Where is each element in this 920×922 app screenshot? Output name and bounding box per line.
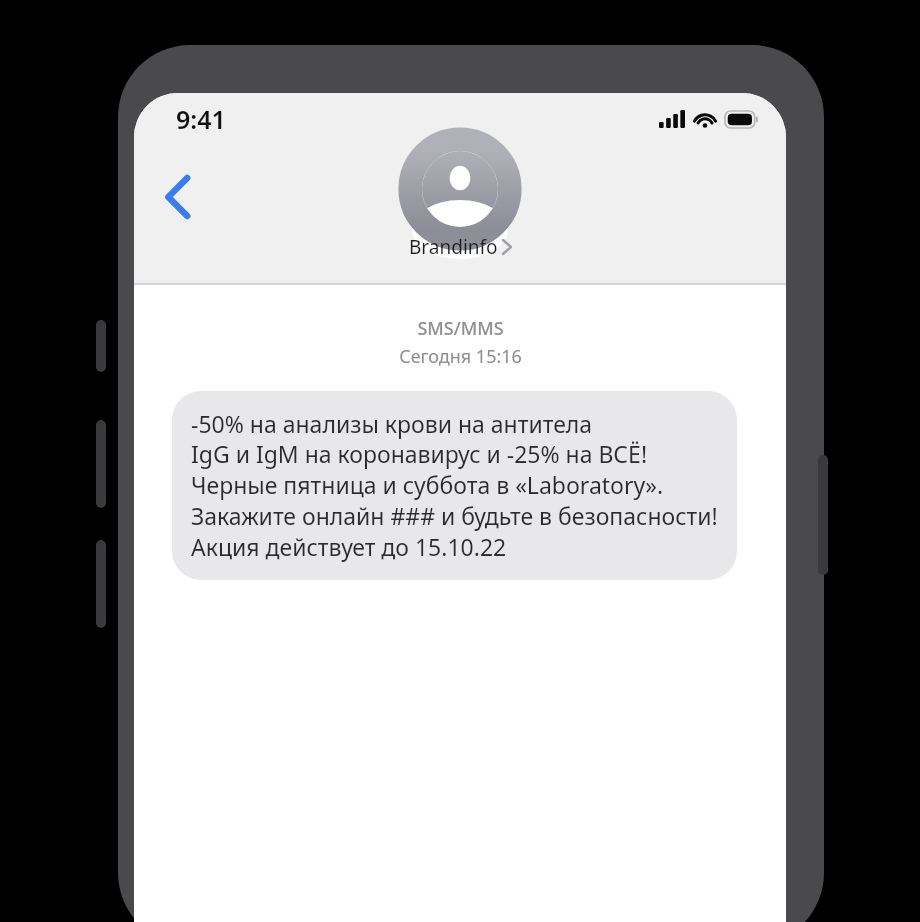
staticText: Brandinfo (409, 234, 498, 260)
staticText: -50% на анализы крови на антитела IgG и … (191, 408, 718, 563)
staticText: SMS/MMS (417, 316, 504, 341)
button[interactable]: -50% на анализы крови на антитела IgG и … (172, 391, 737, 580)
button[interactable]: Brandinfo (409, 151, 511, 260)
button[interactable]: Back (150, 169, 206, 225)
staticText: 9:41 (176, 102, 226, 136)
staticText: Сегодня 15:16 (399, 344, 522, 369)
